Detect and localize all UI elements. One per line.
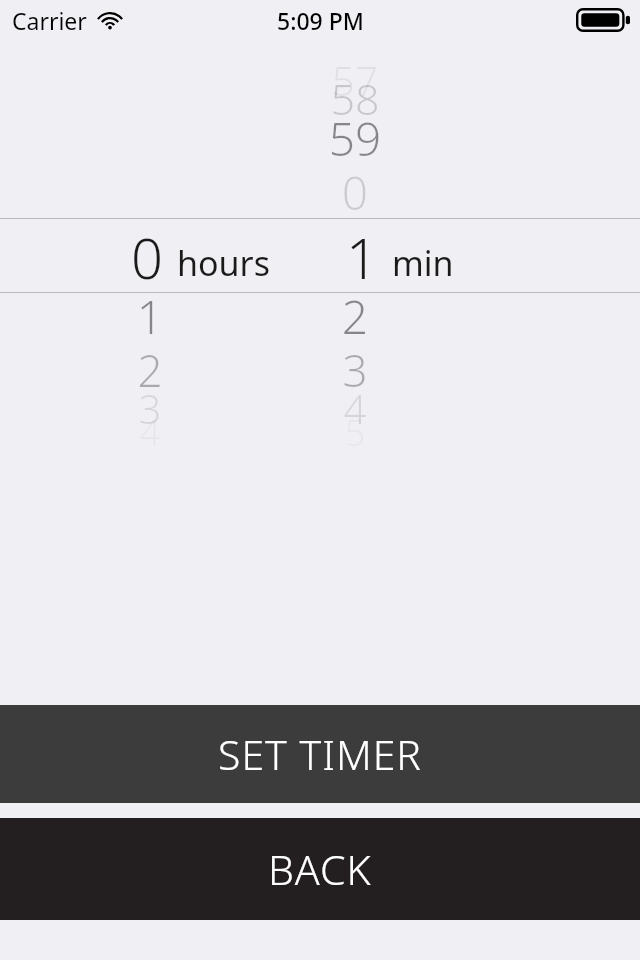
staticText: 3: [255, 340, 455, 400]
button[interactable]: SET TIMER: [0, 705, 640, 803]
staticText: SET TIMER: [218, 726, 422, 782]
staticText: 0: [255, 161, 455, 224]
staticText: 4: [255, 381, 455, 435]
staticText: min: [392, 240, 454, 286]
other: Battery full: [576, 8, 630, 32]
staticText: 58: [255, 69, 455, 128]
staticText: 1: [346, 219, 378, 292]
staticText: 1: [50, 285, 250, 348]
staticText: 2: [50, 340, 250, 400]
other: Wi-Fi signal: [97, 11, 123, 31]
staticText: 59: [255, 107, 455, 170]
staticText: Carrier: [12, 5, 87, 36]
staticText: 5:09 PM: [277, 5, 364, 36]
staticText: 57: [255, 52, 455, 108]
staticText: hours: [177, 240, 270, 286]
button[interactable]: BACK: [0, 818, 640, 920]
button[interactable]: 0: [0, 219, 640, 292]
staticText: 2: [255, 285, 455, 348]
staticText: BACK: [268, 841, 372, 897]
staticText: 3: [50, 381, 250, 435]
staticText: 0: [131, 219, 163, 292]
